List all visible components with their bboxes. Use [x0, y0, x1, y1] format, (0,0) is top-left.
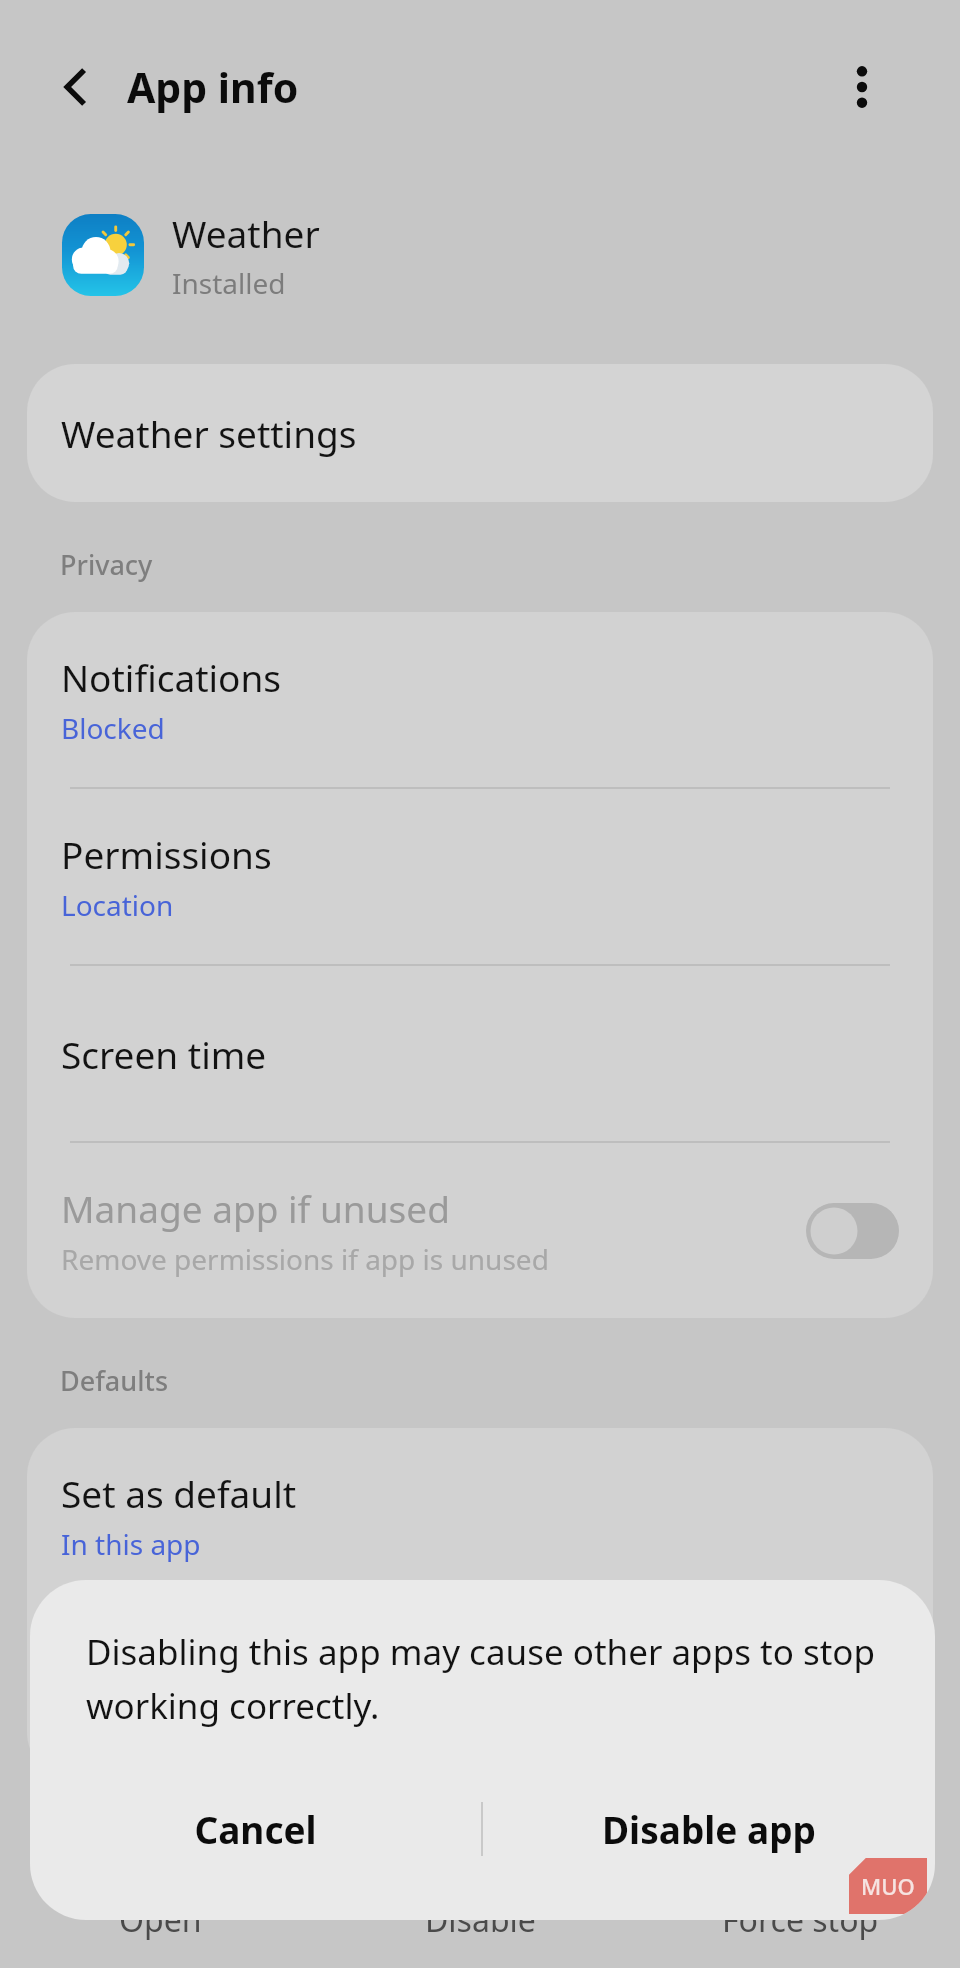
- button[interactable]: Weather settings: [27, 364, 933, 502]
- button[interactable]: Force stop: [640, 1872, 960, 1968]
- staticText: MUO: [861, 1871, 915, 1901]
- staticText: Disable: [425, 1898, 536, 1942]
- staticText: Set as default: [61, 1468, 297, 1518]
- button[interactable]: Open: [0, 1872, 320, 1968]
- staticText: Disabling this app may cause other apps …: [86, 1628, 879, 1730]
- button[interactable]: Permissions: [27, 789, 933, 964]
- button[interactable]: Screen time: [27, 966, 933, 1141]
- staticText: In this app: [61, 1525, 201, 1563]
- staticText: Force stop: [722, 1898, 879, 1942]
- staticText: Notifications: [61, 652, 282, 702]
- button[interactable]: Manage app if unused: [27, 1143, 933, 1318]
- button[interactable]: Disable: [320, 1872, 640, 1968]
- staticText: Privacy: [60, 546, 153, 583]
- staticText: Weather: [172, 208, 320, 258]
- staticText: Disable app: [602, 1804, 816, 1854]
- staticText: App info: [127, 59, 299, 115]
- staticText: Location: [61, 886, 174, 924]
- button[interactable]: Back: [44, 55, 108, 119]
- button[interactable]: More options: [830, 55, 894, 119]
- button[interactable]: Set as default: [27, 1428, 933, 1603]
- staticText: Remove permissions if app is unused: [61, 1240, 549, 1278]
- button[interactable]: Manage app if unused toggle: [806, 1203, 899, 1259]
- staticText: Cancel: [194, 1804, 317, 1854]
- staticText: Open: [119, 1898, 202, 1942]
- button[interactable]: Battery: [27, 1605, 933, 1780]
- button[interactable]: Cancel: [30, 1770, 481, 1888]
- staticText: Installed: [172, 264, 286, 302]
- staticText: Optimised: [61, 1702, 198, 1740]
- staticText: Weather settings: [61, 408, 357, 458]
- staticText: Battery: [61, 1645, 188, 1695]
- staticText: Blocked: [61, 709, 165, 747]
- staticText: Manage app if unused: [61, 1183, 450, 1233]
- button[interactable]: Disable app: [483, 1770, 935, 1888]
- staticText: Permissions: [61, 829, 272, 879]
- button[interactable]: Notifications: [27, 612, 933, 787]
- staticText: Screen time: [61, 1029, 267, 1079]
- staticText: Defaults: [60, 1362, 168, 1399]
